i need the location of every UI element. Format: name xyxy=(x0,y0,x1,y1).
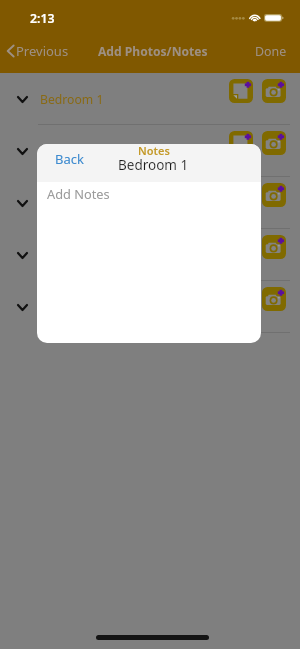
staticText: Add Photos/Notes xyxy=(98,43,208,59)
button[interactable]: Done xyxy=(255,43,300,60)
staticText: Bedroom 3 xyxy=(40,195,104,212)
staticText: Back xyxy=(55,150,84,168)
button[interactable]: Add photo xyxy=(262,183,286,207)
staticText: Previous xyxy=(16,42,69,60)
staticText: Done xyxy=(255,43,287,60)
staticText: Bedroom 1 xyxy=(118,156,189,174)
staticText: Bedroom 2 xyxy=(40,143,104,160)
button[interactable]: Add note xyxy=(229,79,253,103)
staticText: Add Notes xyxy=(47,185,110,202)
button[interactable]: Bedroom 4 xyxy=(0,229,300,281)
staticText: Notes xyxy=(138,144,170,158)
button[interactable]: Bedroom 2 xyxy=(0,125,300,177)
button[interactable]: Bedroom 3 xyxy=(0,177,300,229)
button[interactable]: Back xyxy=(37,150,92,168)
button[interactable]: Add photo xyxy=(262,287,286,311)
button[interactable]: Bedroom 1 xyxy=(0,73,300,125)
button[interactable]: Previous xyxy=(0,42,75,60)
button[interactable]: Add note xyxy=(229,131,253,155)
button[interactable]: Add photo xyxy=(262,235,286,259)
staticText: Bedroom 1 xyxy=(40,91,104,108)
staticText: 2:13 xyxy=(30,10,55,27)
button[interactable]: Add photo xyxy=(262,131,286,155)
button[interactable]: Add photo xyxy=(262,79,286,103)
button[interactable]: Bedroom 5 xyxy=(0,281,300,333)
